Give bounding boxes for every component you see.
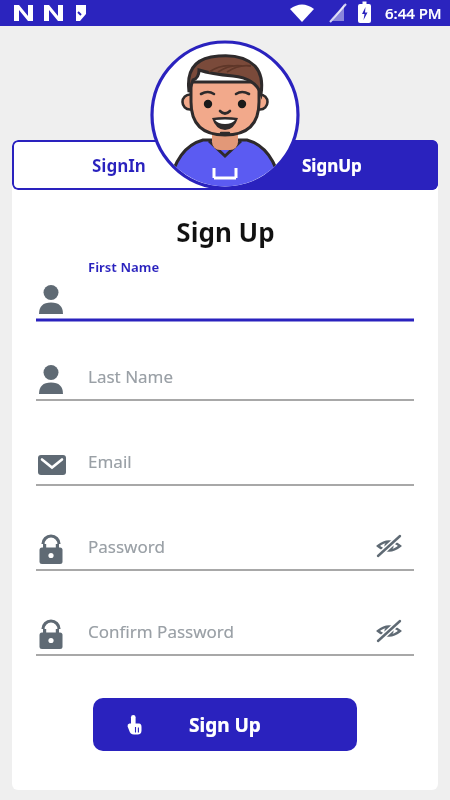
staticText: Last Name: [88, 365, 174, 388]
button[interactable]: Email: [36, 441, 414, 487]
staticText: Confirm Password: [88, 620, 234, 643]
staticText: 6:44 PM: [385, 3, 442, 23]
button[interactable]: SignIn: [12, 140, 225, 190]
staticText: First Name: [88, 258, 160, 276]
button[interactable]: [36, 276, 414, 322]
button[interactable]: Show Password: [374, 531, 404, 561]
button[interactable]: SignUp: [225, 140, 438, 190]
staticText: SignIn: [92, 154, 146, 177]
staticText: Sign Up: [189, 712, 261, 738]
staticText: SignUp: [302, 154, 362, 177]
button[interactable]: Sign Up: [93, 698, 357, 751]
button[interactable]: Password: [36, 526, 414, 572]
staticText: Email: [88, 450, 132, 473]
staticText: Password: [88, 535, 165, 558]
button[interactable]: Last Name: [36, 356, 414, 402]
button[interactable]: Confirm Password: [36, 611, 414, 657]
button[interactable]: Show Confirm Password: [374, 616, 404, 646]
staticText: Sign Up: [176, 214, 275, 249]
